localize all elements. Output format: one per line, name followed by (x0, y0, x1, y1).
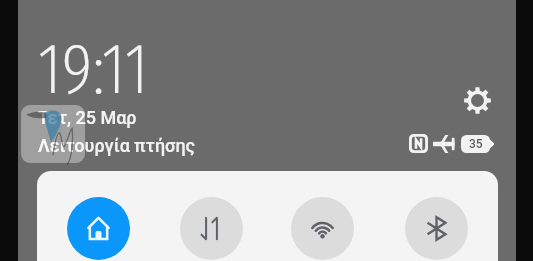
staticText: 35 (469, 137, 483, 151)
staticText: Τετ, 25 Μαρ (38, 107, 137, 128)
button[interactable]: Wi-Fi (291, 197, 354, 260)
staticText: 19:11 (38, 27, 149, 112)
button[interactable]: Bluetooth (405, 197, 468, 260)
button[interactable]: Home (67, 197, 130, 260)
button[interactable]: Mobile data (180, 197, 243, 260)
staticText: Λειτουργία πτήσης (38, 135, 196, 156)
button[interactable]: Settings (464, 87, 491, 114)
